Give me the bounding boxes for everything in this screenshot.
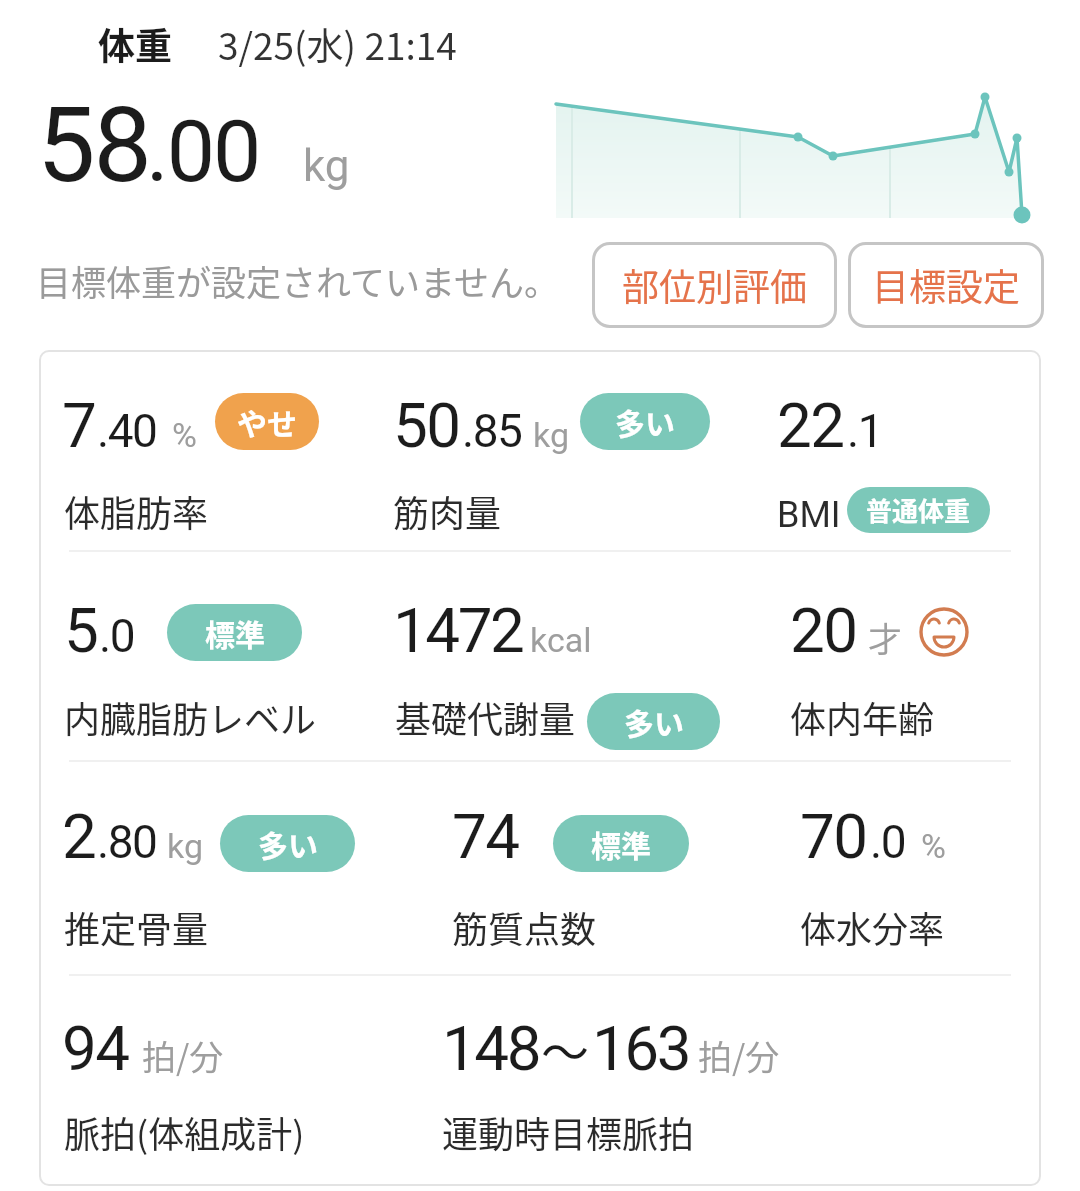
staticText: 体内年齢 [790, 691, 935, 743]
staticText: 運動時目標脈拍 [442, 1106, 695, 1158]
staticText: 58 [37, 85, 150, 207]
staticText: 筋質点数 [452, 901, 597, 953]
staticText: % [172, 415, 197, 455]
staticText: kg [303, 140, 350, 192]
staticText: 7 [62, 389, 96, 462]
staticText: 才 [868, 613, 902, 662]
staticText: 2 [62, 800, 96, 873]
staticText: .0 [99, 609, 134, 663]
staticText: 20 [790, 594, 857, 667]
staticText: 多い [258, 822, 318, 865]
staticText: 74 [452, 800, 519, 873]
staticText: 体脂肪率 [64, 485, 209, 537]
staticText: 多い [624, 700, 684, 743]
staticText: kcal [530, 620, 592, 660]
staticText: 50 [393, 389, 460, 462]
staticText: .1 [847, 404, 882, 458]
staticText: 3/25(水) 21:14 [218, 17, 457, 71]
button[interactable]: 部位別評価 [592, 242, 837, 328]
staticText: やせ [237, 400, 297, 443]
staticText: 基礎代謝量 [395, 691, 576, 743]
staticText: .0 [870, 815, 905, 869]
staticText: .80 [97, 815, 157, 869]
staticText: 体水分率 [800, 901, 945, 953]
staticText: kg [533, 415, 569, 455]
staticText: 推定骨量 [64, 901, 209, 953]
staticText: 目標設定 [872, 258, 1020, 312]
staticText: 拍/分 [698, 1031, 780, 1080]
staticText: 普通体重 [866, 491, 971, 529]
staticText: 94 [62, 1012, 129, 1085]
staticText: 22 [777, 389, 844, 462]
staticText: 〜 [541, 1014, 590, 1084]
staticText: 多い [615, 400, 675, 443]
staticText: 163 [592, 1012, 690, 1085]
staticText: 脈拍(体組成計) [64, 1106, 305, 1158]
staticText: 70 [800, 800, 867, 873]
staticText: 体重 [98, 17, 172, 71]
staticText: 148 [442, 1012, 540, 1085]
staticText: 内臓脂肪レベル [64, 691, 317, 743]
staticText: % [921, 826, 946, 866]
staticText: 拍/分 [142, 1031, 224, 1080]
staticText: 標準 [205, 611, 265, 654]
staticText: 部位別評価 [622, 258, 807, 312]
staticText: .00 [146, 101, 260, 202]
staticText: .40 [97, 404, 157, 458]
staticText: 目標体重が設定されていません。 [36, 255, 559, 306]
staticText: kg [167, 826, 203, 866]
staticText: 標準 [591, 822, 651, 865]
staticText: .85 [462, 404, 522, 458]
staticText: 筋肉量 [393, 485, 502, 537]
staticText: BMI [777, 494, 841, 536]
staticText: 1472 [393, 594, 523, 667]
staticText: 5 [64, 594, 98, 667]
button[interactable]: 目標設定 [848, 242, 1044, 328]
